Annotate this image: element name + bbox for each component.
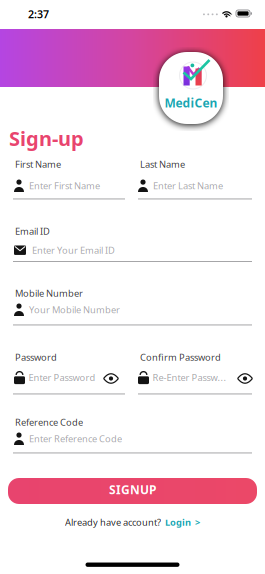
staticText: First Name bbox=[15, 158, 61, 170]
staticText: Password bbox=[15, 351, 57, 363]
button[interactable]: SIGNUP bbox=[8, 478, 257, 504]
staticText: SIGNUP bbox=[109, 481, 156, 497]
staticText: Confirm Password bbox=[140, 351, 221, 363]
staticText: Re-Enter Passw... bbox=[152, 371, 226, 384]
button[interactable]: Show confirm password bbox=[237, 373, 253, 383]
staticText: Enter First Name bbox=[29, 180, 100, 192]
staticText: MediCen bbox=[164, 95, 217, 111]
staticText: Last Name bbox=[140, 158, 185, 170]
staticText: 2:37 bbox=[28, 7, 49, 21]
staticText: Enter Password bbox=[28, 371, 95, 384]
staticText: Mobile Number bbox=[15, 287, 83, 299]
staticText: Login > bbox=[165, 516, 200, 528]
staticText: Enter Last Name bbox=[153, 180, 223, 192]
staticText: Enter Reference Code bbox=[29, 433, 122, 445]
staticText: Your Mobile Number bbox=[29, 304, 120, 316]
staticText: Enter Your Email ID bbox=[32, 244, 115, 256]
staticText: Email ID bbox=[15, 225, 50, 237]
button[interactable]: Show password bbox=[103, 373, 119, 383]
staticText: Sign-up bbox=[9, 125, 84, 152]
staticText: Already have account? bbox=[65, 516, 161, 528]
staticText: Reference Code bbox=[15, 416, 83, 428]
button[interactable]: Login > bbox=[165, 516, 200, 528]
